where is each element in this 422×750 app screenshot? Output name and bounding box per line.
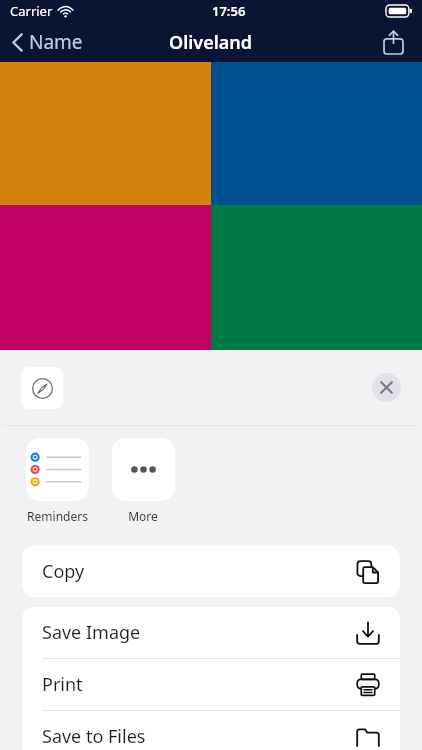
staticText: Copy — [42, 559, 85, 584]
button[interactable]: Name — [8, 25, 87, 59]
button[interactable]: Copy — [22, 546, 400, 597]
staticText: Name — [29, 29, 83, 55]
button[interactable]: Print — [22, 659, 400, 710]
staticText: Print — [42, 672, 83, 697]
button[interactable]: More — [107, 438, 179, 524]
button[interactable]: Close — [372, 373, 401, 402]
button[interactable]: Save to Files — [22, 711, 400, 750]
button[interactable]: Safari page — [21, 367, 63, 409]
button[interactable]: Save Image — [22, 607, 400, 658]
staticText: Save to Files — [42, 724, 146, 749]
button[interactable]: Reminders — [21, 438, 93, 524]
staticText: Save Image — [42, 620, 141, 645]
staticText: Reminders — [27, 508, 88, 524]
staticText: Carrier — [10, 2, 53, 20]
button[interactable]: Share — [376, 25, 410, 59]
staticText: More — [128, 508, 158, 524]
staticText: Oliveland — [169, 30, 253, 55]
staticText: 17:56 — [212, 2, 246, 20]
